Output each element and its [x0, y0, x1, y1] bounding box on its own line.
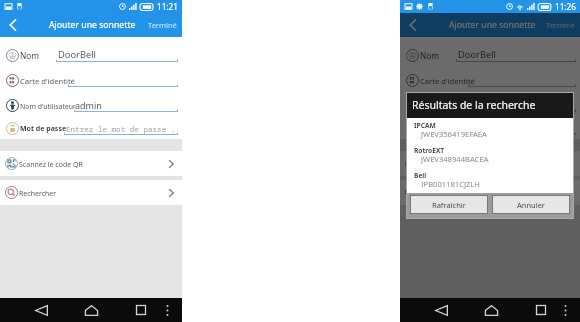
staticText: Carte d'identité — [420, 76, 475, 86]
staticText: Rechercher — [419, 189, 457, 199]
staticText: Carte d'identité — [20, 76, 75, 86]
staticText: Ajouter une sonnette — [449, 19, 536, 31]
button[interactable]: Recent apps — [131, 300, 151, 320]
button[interactable]: Back — [31, 300, 52, 321]
staticText: DoorBell — [58, 48, 96, 61]
button[interactable]: Carte d'identité — [400, 62, 580, 87]
button[interactable]: RotroEXT — [407, 143, 573, 168]
staticText: Nom d'utilisateur — [420, 102, 476, 111]
staticText: IPCAM — [414, 121, 436, 130]
button[interactable]: Back — [431, 300, 452, 321]
button[interactable]: Terminé — [546, 20, 575, 30]
button[interactable]: Mot de passe — [0, 112, 182, 135]
button[interactable]: Home — [481, 300, 502, 321]
staticText: Nom — [420, 50, 440, 61]
button[interactable]: Home — [81, 300, 102, 321]
staticText: Rechercher — [19, 189, 57, 199]
staticText: Mot de passe — [20, 124, 67, 134]
staticText: Nom d'utilisateur — [20, 102, 76, 111]
staticText: Bell — [414, 171, 427, 180]
button[interactable]: Mot de passe — [400, 112, 580, 135]
button[interactable]: Nom — [0, 37, 182, 62]
staticText: JWEV356419EFAEA — [421, 129, 487, 139]
button[interactable]: Carte d'identité — [0, 62, 182, 87]
button[interactable]: Rafraîchir — [411, 196, 487, 213]
button[interactable]: IPCAM — [407, 118, 573, 143]
staticText: Nom — [20, 50, 40, 61]
button[interactable]: Terminé — [148, 20, 177, 30]
button[interactable]: Rechercher — [0, 180, 182, 205]
staticText: Terminé — [546, 20, 575, 30]
button[interactable]: Bell — [407, 168, 573, 193]
button[interactable]: Back — [403, 15, 423, 35]
button[interactable]: More options — [159, 302, 175, 318]
staticText: Scannez le code QR — [19, 160, 83, 170]
button[interactable]: Back — [3, 15, 23, 35]
staticText: Ajouter une sonnette — [49, 19, 136, 31]
staticText: admin — [75, 99, 102, 111]
staticText: Scannez le code QR — [419, 160, 483, 170]
staticText: IPB001181CJZLH — [421, 179, 480, 189]
staticText: Terminé — [148, 20, 177, 30]
staticText: DoorBell — [458, 48, 496, 61]
button[interactable]: Nom d'utilisateur — [400, 87, 580, 112]
button[interactable]: Scannez le code QR — [0, 151, 182, 176]
staticText: Entrez le mot de passe . — [66, 124, 176, 134]
button[interactable]: More options — [557, 302, 573, 318]
staticText: admin — [475, 99, 502, 111]
staticText: Entrez le mot de passe . — [466, 124, 576, 134]
staticText: JWEV348944BACEA — [421, 154, 489, 164]
staticText: Mot de passe — [420, 124, 467, 134]
staticText: 11:21 — [157, 1, 178, 12]
button[interactable]: Annuler — [493, 196, 569, 213]
staticText: RotroEXT — [414, 146, 445, 155]
staticText: Résultats de la recherche — [412, 98, 536, 112]
button[interactable]: Recent apps — [531, 300, 551, 320]
staticText: Annuler — [517, 200, 545, 210]
staticText: 11:26 — [555, 1, 576, 12]
staticText: Rafraîchir — [432, 200, 466, 210]
button[interactable]: Nom d'utilisateur — [0, 87, 182, 112]
button[interactable]: Nom — [400, 37, 580, 62]
button[interactable]: Scannez le code QR — [400, 151, 580, 176]
button[interactable]: Rechercher — [400, 180, 580, 205]
